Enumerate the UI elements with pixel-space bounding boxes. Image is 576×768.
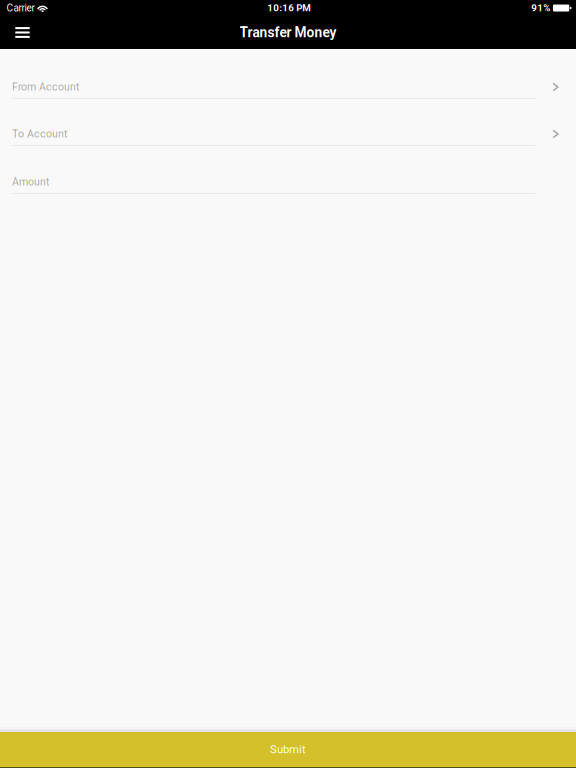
button[interactable]: To Account [0,123,576,171]
staticText: Amount [12,176,49,188]
button[interactable]: Submit [0,732,576,767]
staticText: From Account [12,81,79,93]
staticText: To Account [12,128,67,140]
staticText: Submit [270,743,306,756]
button[interactable]: Amount [0,171,576,194]
staticText: Transfer Money [239,24,336,41]
button[interactable]: From Account [0,76,576,123]
staticText: 91% [531,2,550,14]
staticText: 10:16 PM [267,2,311,14]
staticText: Carrier [6,2,34,14]
button[interactable]: Menu [0,16,45,49]
